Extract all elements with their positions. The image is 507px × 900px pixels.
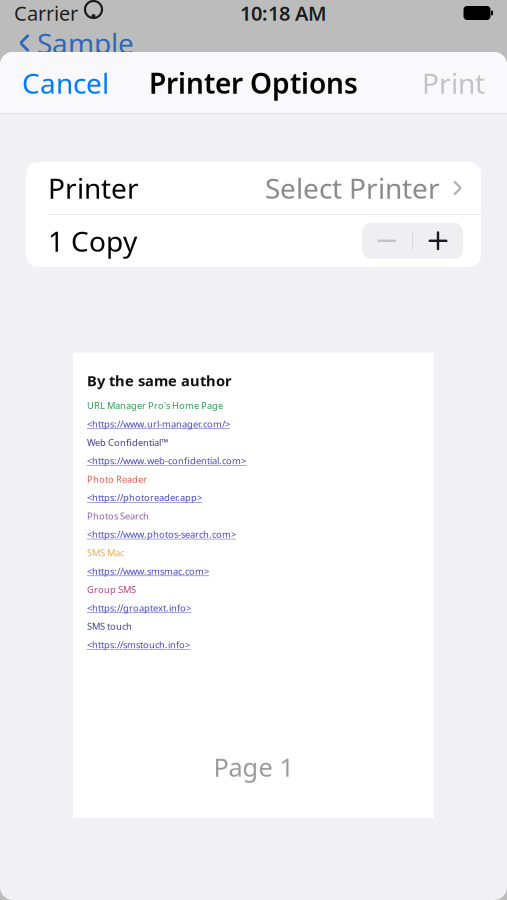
staticText: Cancel [22, 64, 109, 102]
staticText: 10:18 AM [240, 0, 327, 26]
staticText: URL Manager Pro's Home Page [87, 399, 223, 412]
staticText: Web Confidential™ [87, 436, 168, 448]
staticText: <https://www.web-confidential.com> [87, 454, 246, 467]
staticText: Page 1 [213, 750, 293, 784]
button[interactable]: Print [408, 52, 507, 114]
staticText: Carrier [14, 0, 78, 26]
button[interactable]: Printer [26, 162, 481, 214]
staticText: By the same author [87, 371, 232, 390]
staticText: SMS touch [87, 620, 132, 632]
staticText: 1 Copy [48, 222, 137, 259]
staticText: <https://www.smsmac.com> [87, 565, 209, 577]
button[interactable]: Increase copies [413, 223, 463, 259]
staticText: <https://photoreader.app> [87, 491, 202, 504]
staticText: <https://groaptext.info> [87, 602, 191, 614]
staticText: Printer [48, 169, 139, 207]
staticText: <https://smstouch.info> [87, 638, 190, 651]
staticText: <https://www.photos-search.com> [87, 528, 236, 540]
button[interactable]: Decrease copies [362, 223, 412, 259]
staticText: <https://www.url-manager.com/> [87, 418, 230, 430]
staticText: SMS Mac [87, 546, 124, 559]
staticText: Print [422, 64, 485, 102]
staticText: Photos Search [87, 510, 149, 522]
staticText: Group SMS [87, 583, 136, 596]
staticText: Photo Reader [87, 473, 147, 485]
staticText: Printer Options [149, 64, 358, 102]
staticText: Sample [37, 24, 134, 62]
staticText: Select Printer [265, 169, 440, 207]
button[interactable]: Cancel [0, 52, 123, 114]
